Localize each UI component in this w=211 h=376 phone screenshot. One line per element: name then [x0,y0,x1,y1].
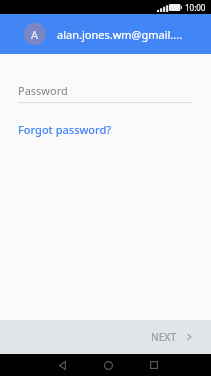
button[interactable]: Back [52,355,72,375]
staticText: alan.jones.wm@gmail.... [57,27,183,42]
staticText: 10:00 [185,2,206,13]
staticText: Password [18,83,68,98]
staticText: Forgot password? [18,122,112,137]
button[interactable]: Home [98,355,118,375]
button[interactable]: Password [18,78,193,102]
button[interactable]: NEXT [147,324,197,350]
staticText: A [31,27,39,42]
staticText: NEXT [151,330,177,344]
button[interactable]: Recent apps [144,355,164,375]
button[interactable]: A [24,23,183,45]
button[interactable]: Forgot password? [18,122,112,137]
